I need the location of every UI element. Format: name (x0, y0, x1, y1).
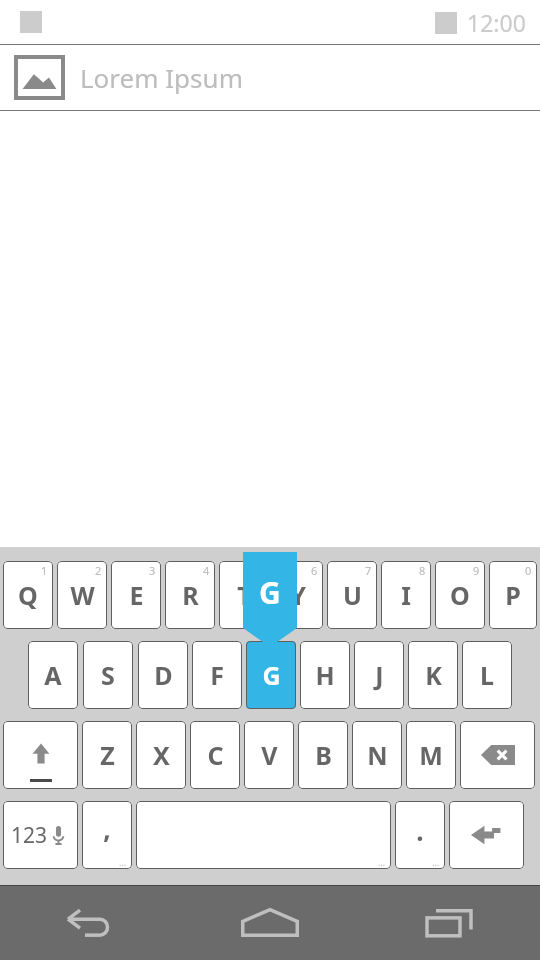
button[interactable]: D (138, 641, 188, 709)
button[interactable]: 8 (381, 561, 431, 629)
button[interactable]: X (136, 721, 186, 789)
button[interactable]: M (406, 721, 456, 789)
staticText: 12:00 (467, 7, 526, 38)
staticText: Lorem Ipsum (80, 60, 243, 95)
button[interactable]: ... (395, 801, 445, 869)
staticText: 4 (203, 563, 210, 578)
staticText: M (419, 738, 443, 772)
staticText: 0 (525, 563, 532, 578)
button[interactable]: F (192, 641, 242, 709)
other: Backspace (460, 721, 535, 789)
staticText: H (315, 658, 335, 692)
button[interactable]: Recent apps (360, 886, 540, 960)
staticText: K (425, 658, 442, 692)
button[interactable]: B (298, 721, 348, 789)
button[interactable]: 6 (273, 561, 323, 629)
staticText: W (70, 578, 95, 612)
button[interactable]: ... (136, 801, 391, 869)
button[interactable]: C (190, 721, 240, 789)
staticText: P (505, 578, 521, 612)
staticText: V (261, 738, 278, 772)
staticText: 3 (149, 563, 156, 578)
staticText: ... (432, 856, 440, 868)
staticText: 1 (41, 563, 48, 578)
button[interactable]: 3 (111, 561, 161, 629)
staticText: N (367, 738, 388, 772)
staticText: A (44, 658, 62, 692)
staticText: D (154, 658, 173, 692)
button[interactable]: 4 (165, 561, 215, 629)
staticText: G (262, 658, 281, 692)
button[interactable]: Image (16, 57, 63, 98)
staticText: S (101, 658, 115, 692)
staticText: G (259, 572, 281, 613)
other: Shift (3, 721, 78, 789)
other: Enter (449, 801, 524, 869)
button[interactable]: H (300, 641, 350, 709)
staticText: L (480, 658, 494, 692)
button[interactable]: Home (180, 886, 360, 960)
button[interactable]: 1 (3, 561, 53, 629)
staticText: 7 (365, 563, 372, 578)
button[interactable]: 5 (219, 561, 269, 629)
button[interactable]: G (246, 641, 296, 709)
staticText: R (182, 578, 199, 612)
button[interactable]: N (352, 721, 402, 789)
staticText: . (416, 813, 424, 848)
staticText: Q (18, 578, 38, 612)
staticText: ... (119, 856, 127, 868)
staticText: U (343, 578, 362, 612)
staticText: 8 (419, 563, 426, 578)
button[interactable]: Backspace (460, 721, 535, 789)
button[interactable]: 123 (3, 801, 78, 869)
button[interactable]: 2 (57, 561, 107, 629)
staticText: Z (100, 738, 115, 772)
button[interactable]: Shift (3, 721, 78, 789)
staticText: X (153, 738, 170, 772)
staticText: C (207, 738, 224, 772)
button[interactable]: 7 (327, 561, 377, 629)
button[interactable]: 9 (435, 561, 485, 629)
staticText: F (210, 658, 224, 692)
button[interactable]: V (244, 721, 294, 789)
button[interactable]: 0 (489, 561, 537, 629)
button[interactable]: ... (82, 801, 132, 869)
staticText: E (129, 578, 144, 612)
staticText: T (237, 578, 252, 612)
button[interactable]: Z (82, 721, 132, 789)
staticText: ... (378, 856, 386, 868)
staticText: I (401, 578, 411, 612)
staticText: O (450, 578, 470, 612)
staticText: 9 (473, 563, 480, 578)
staticText: B (315, 738, 332, 772)
button[interactable]: J (354, 641, 404, 709)
staticText: 2 (95, 563, 102, 578)
button[interactable]: L (462, 641, 512, 709)
button[interactable]: K (408, 641, 458, 709)
button[interactable]: Enter (449, 801, 524, 869)
staticText: 6 (311, 563, 318, 578)
button[interactable]: S (83, 641, 133, 709)
staticText: 123 (11, 821, 48, 850)
staticText: J (375, 658, 384, 692)
staticText: , (103, 811, 111, 846)
staticText: Y (290, 578, 306, 612)
button[interactable]: A (28, 641, 78, 709)
button[interactable]: Back (0, 886, 180, 960)
